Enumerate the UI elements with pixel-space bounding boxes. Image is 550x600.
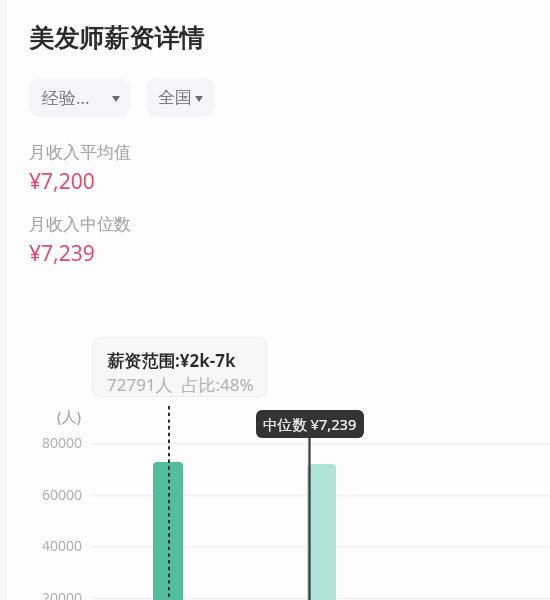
button[interactable]: 中位数 ¥7,239 柱状条 — [307, 464, 336, 600]
staticText: 月收入中位数 — [29, 214, 131, 235]
staticText: 美发师薪资详情 — [29, 23, 204, 54]
staticText: 72791人 占比:48% — [107, 373, 254, 396]
staticText: 经验... — [42, 86, 90, 109]
button[interactable]: 中位数 ¥7,239 — [256, 410, 364, 438]
staticText: 60000 — [0, 485, 82, 504]
staticText: 40000 — [0, 536, 82, 555]
button[interactable]: 经验... — [29, 78, 130, 117]
staticText: 全国 — [158, 87, 192, 108]
staticText: ¥7,200 — [29, 167, 95, 196]
button[interactable]: 薪资范围:¥2k-7k — [92, 337, 267, 397]
staticText: 中位数 ¥7,239 — [263, 414, 357, 434]
staticText: 20000 — [0, 588, 82, 600]
staticText: 80000 — [0, 433, 82, 452]
staticText: (人) — [57, 406, 82, 426]
button[interactable]: 全国 — [146, 78, 215, 117]
staticText: ¥7,239 — [29, 239, 95, 268]
staticText: 月收入平均值 — [29, 142, 131, 163]
staticText: 薪资范围:¥2k-7k — [107, 349, 236, 372]
button[interactable]: 薪资范围 ¥2k-7k 柱状条 — [153, 462, 183, 600]
